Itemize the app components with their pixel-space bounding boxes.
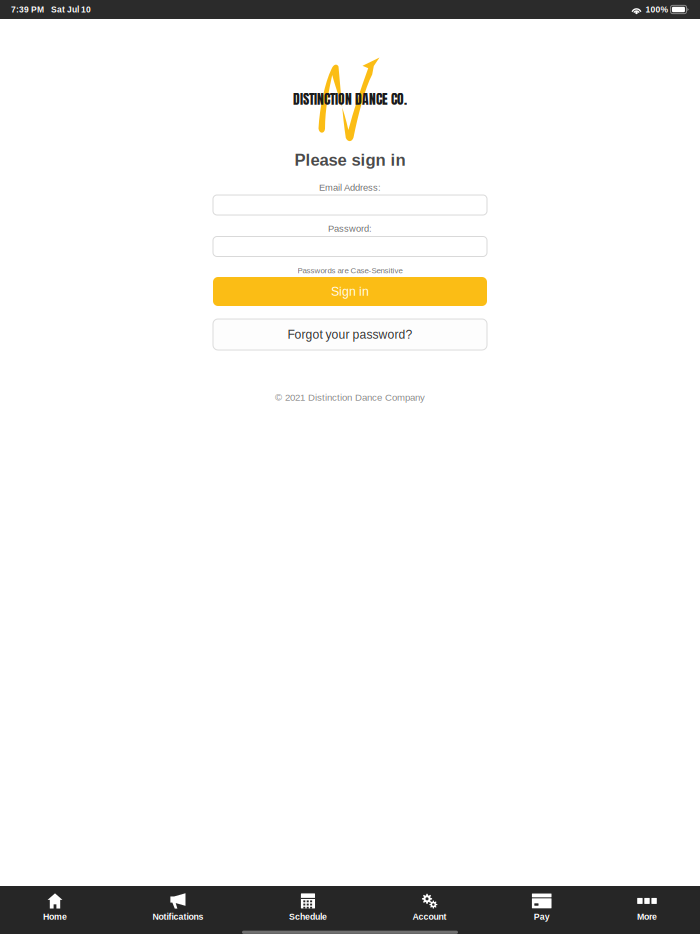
staticText: DISTINCTION DANCE CO. xyxy=(293,89,407,109)
button[interactable]: More xyxy=(637,883,657,931)
button[interactable]: Account xyxy=(412,883,446,931)
staticText: Email Address: xyxy=(319,182,381,193)
staticText: Forgot your password? xyxy=(287,328,412,341)
staticText: Notifications xyxy=(152,912,203,922)
staticText: Account xyxy=(412,912,446,922)
staticText: 100% xyxy=(645,5,668,14)
staticText: Passwords are Case-Sensitive xyxy=(297,266,402,275)
button[interactable]: Schedule xyxy=(289,883,327,931)
staticText: Please sign in xyxy=(294,151,405,169)
staticText: Schedule xyxy=(289,912,327,922)
button[interactable]: Forgot your password? xyxy=(213,319,487,350)
staticText: 7:39 PM xyxy=(11,5,44,14)
button[interactable]: Notifications xyxy=(152,883,203,931)
staticText: Sat Jul 10 xyxy=(51,5,91,14)
staticText: Sign in xyxy=(331,285,369,298)
button[interactable]: Pay xyxy=(532,883,551,931)
staticText: More xyxy=(637,912,657,922)
staticText: Home xyxy=(43,912,67,922)
button[interactable]: Home xyxy=(43,883,67,931)
staticText: Pay xyxy=(534,912,550,922)
button[interactable]: Sign in xyxy=(213,277,487,306)
staticText: Password: xyxy=(328,223,372,234)
staticText: © 2021 Distinction Dance Company xyxy=(275,392,425,403)
